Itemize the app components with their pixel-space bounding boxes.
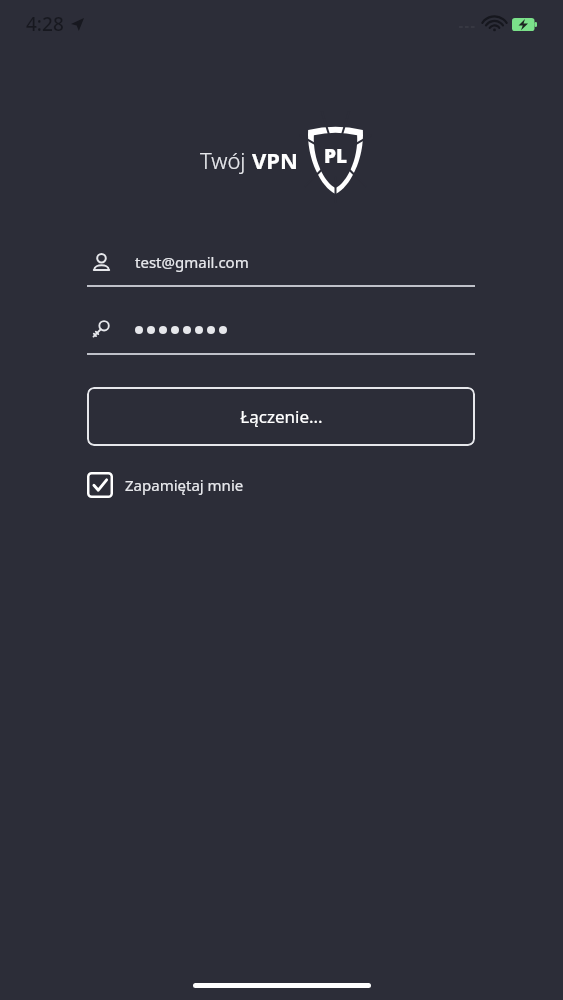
button[interactable]: Zapamiętaj mnie (87, 472, 244, 498)
staticText: 4:28 (26, 11, 64, 37)
staticText: PL (324, 143, 348, 169)
button[interactable]: Password (87, 313, 475, 355)
staticText: Zapamiętaj mnie (125, 475, 244, 495)
staticText: test@gmail.com (135, 252, 249, 272)
other: Account (87, 252, 115, 273)
button[interactable]: Łączenie... (87, 387, 475, 446)
button[interactable]: Account (87, 245, 475, 287)
staticText: Łączenie... (240, 405, 323, 428)
staticText: Twój (200, 145, 252, 175)
other: Password (87, 319, 115, 341)
staticText: VPN (252, 145, 298, 175)
